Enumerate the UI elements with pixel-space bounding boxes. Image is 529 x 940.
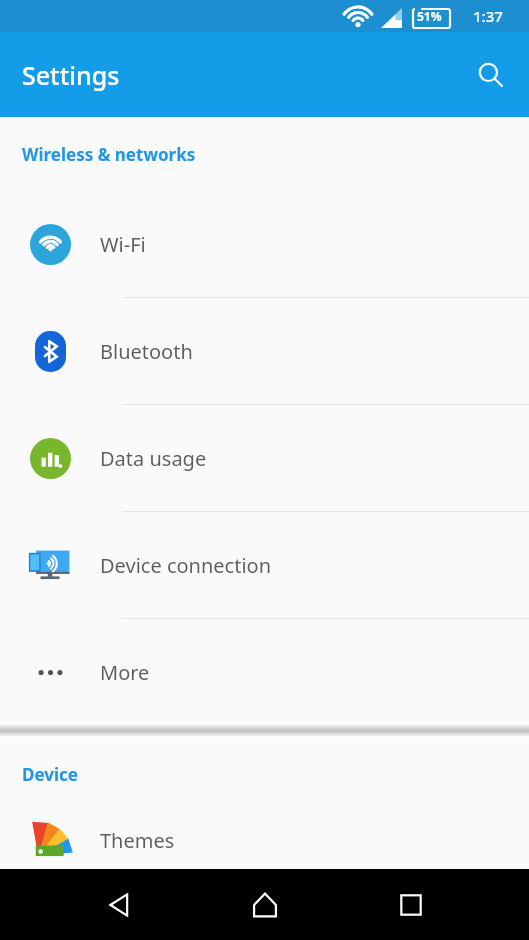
button[interactable]: Data usage (0, 405, 529, 512)
button[interactable]: Recents (387, 881, 435, 929)
button[interactable]: Search (467, 51, 515, 99)
staticText: Device connection (100, 552, 272, 579)
staticText: 1:37 (473, 6, 503, 26)
staticText: Bluetooth (100, 338, 193, 365)
button[interactable]: Home (241, 881, 289, 929)
staticText: Wi-Fi (100, 231, 146, 258)
staticText: Themes (100, 827, 175, 854)
staticText: More (100, 659, 150, 686)
staticText: Wireless & networks (22, 143, 196, 166)
button[interactable]: Back (95, 881, 143, 929)
button[interactable]: Device connection (0, 512, 529, 619)
staticText: Device (22, 763, 78, 786)
button[interactable]: More (0, 619, 529, 725)
staticText: Settings (22, 58, 120, 92)
button[interactable]: Wi-Fi (0, 191, 529, 298)
button[interactable]: Themes (0, 811, 529, 869)
staticText: 51% (417, 8, 442, 24)
button[interactable]: Bluetooth (0, 298, 529, 405)
staticText: Data usage (100, 445, 207, 472)
